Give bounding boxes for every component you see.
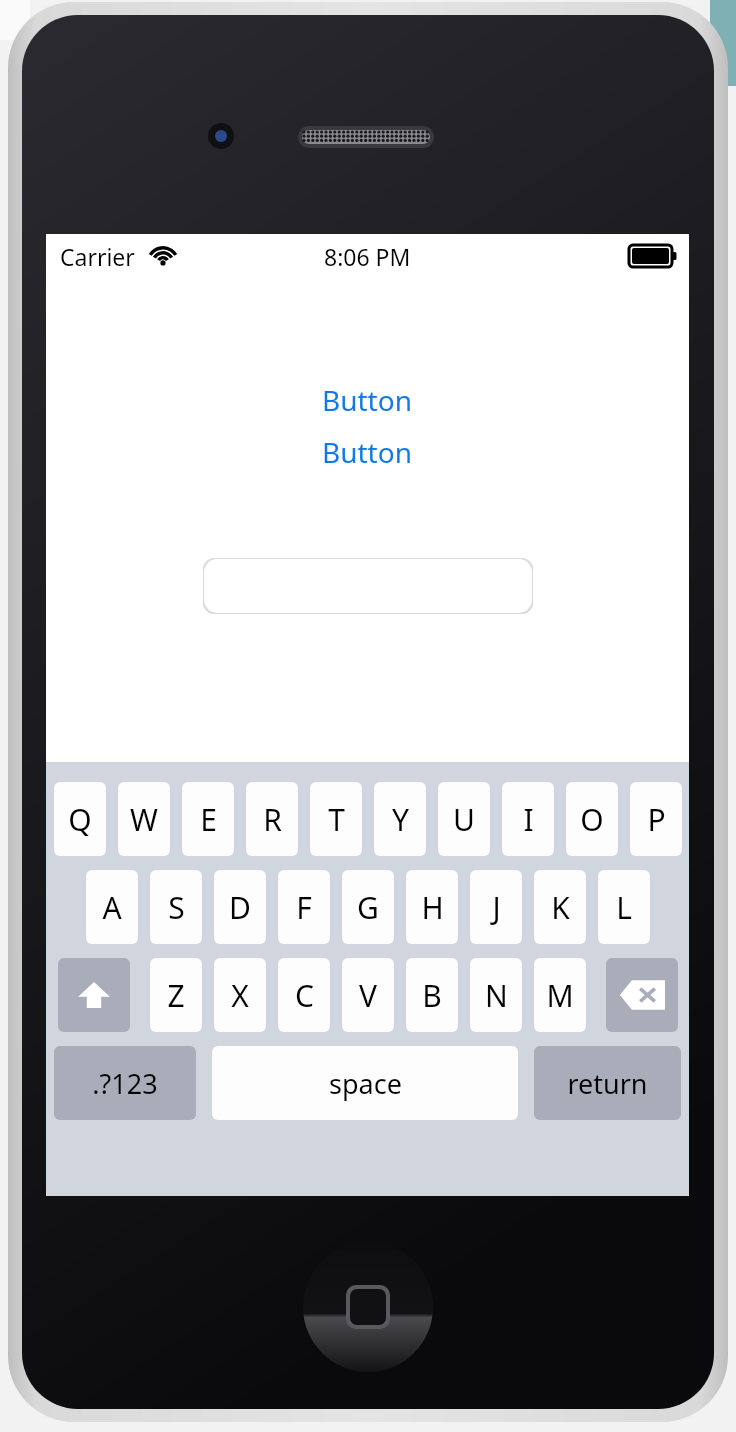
staticText: C: [295, 975, 314, 1016]
staticText: B: [422, 975, 442, 1016]
staticText: F: [296, 887, 312, 928]
staticText: X: [231, 975, 249, 1016]
staticText: Q: [68, 799, 92, 840]
button[interactable]: H: [406, 870, 458, 944]
button[interactable]: Button: [307, 431, 427, 473]
button[interactable]: Shift: [58, 958, 130, 1032]
staticText: N: [485, 975, 508, 1016]
button[interactable]: F: [278, 870, 330, 944]
button[interactable]: Y: [374, 782, 426, 856]
staticText: V: [359, 975, 377, 1016]
button[interactable]: E: [182, 782, 234, 856]
button[interactable]: C: [278, 958, 330, 1032]
button[interactable]: D: [214, 870, 266, 944]
staticText: Carrier: [60, 241, 135, 272]
button[interactable]: X: [214, 958, 266, 1032]
staticText: H: [421, 887, 444, 928]
staticText: 8:06 PM: [324, 241, 411, 272]
staticText: T: [328, 799, 345, 840]
staticText: W: [130, 799, 158, 840]
button[interactable]: Backspace: [606, 958, 678, 1032]
staticText: G: [357, 887, 379, 928]
button[interactable]: P: [630, 782, 682, 856]
staticText: D: [229, 887, 251, 928]
staticText: Button: [322, 433, 412, 471]
button[interactable]: K: [534, 870, 586, 944]
staticText: P: [647, 799, 666, 840]
staticText: M: [546, 975, 574, 1016]
button[interactable]: T: [310, 782, 362, 856]
button[interactable]: Q: [54, 782, 106, 856]
staticText: return: [567, 1065, 648, 1102]
button[interactable]: S: [150, 870, 202, 944]
button[interactable]: M: [534, 958, 586, 1032]
button[interactable]: Button: [307, 379, 427, 421]
button[interactable]: B: [406, 958, 458, 1032]
staticText: O: [580, 799, 604, 840]
button[interactable]: Z: [150, 958, 202, 1032]
button[interactable]: R: [246, 782, 298, 856]
staticText: R: [263, 799, 282, 840]
button[interactable]: N: [470, 958, 522, 1032]
button[interactable]: space: [212, 1046, 518, 1120]
staticText: L: [616, 887, 632, 928]
button[interactable]: L: [598, 870, 650, 944]
staticText: I: [523, 799, 534, 840]
button[interactable]: G: [342, 870, 394, 944]
staticText: E: [200, 799, 217, 840]
staticText: U: [453, 799, 475, 840]
button[interactable]: J: [470, 870, 522, 944]
staticText: .?123: [92, 1065, 158, 1102]
button[interactable]: [203, 558, 533, 614]
staticText: J: [492, 887, 501, 928]
staticText: A: [102, 887, 122, 928]
staticText: Z: [167, 975, 185, 1016]
button[interactable]: I: [502, 782, 554, 856]
button[interactable]: O: [566, 782, 618, 856]
staticText: K: [551, 887, 570, 928]
button[interactable]: A: [86, 870, 138, 944]
button[interactable]: W: [118, 782, 170, 856]
button[interactable]: V: [342, 958, 394, 1032]
staticText: S: [168, 887, 185, 928]
staticText: Button: [322, 381, 412, 419]
button[interactable]: .?123: [54, 1046, 196, 1120]
button[interactable]: return: [534, 1046, 681, 1120]
staticText: space: [329, 1065, 402, 1102]
button[interactable]: U: [438, 782, 490, 856]
staticText: Y: [392, 799, 409, 840]
